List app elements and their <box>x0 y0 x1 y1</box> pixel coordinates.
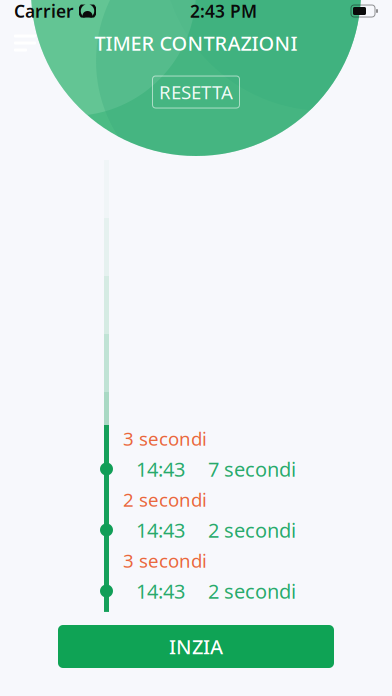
staticText: RESETTA <box>159 80 233 104</box>
button[interactable]: RESETTA <box>152 76 239 108</box>
staticText: 2 secondi <box>208 517 296 543</box>
staticText: 2:43 PM <box>190 0 257 22</box>
staticText: 2 secondi <box>123 487 207 512</box>
staticText: Carrier <box>14 0 74 22</box>
staticText: 3 secondi <box>123 426 207 451</box>
staticText: TIMER CONTRAZIONI <box>94 30 297 56</box>
button[interactable]: INZIA <box>58 625 334 668</box>
staticText: 14:43 <box>136 456 185 482</box>
staticText: INZIA <box>169 633 223 660</box>
staticText: 7 secondi <box>208 456 296 482</box>
button[interactable]: Menu <box>0 22 50 63</box>
staticText: 3 secondi <box>123 548 207 573</box>
staticText: 14:43 <box>136 578 185 604</box>
staticText: 14:43 <box>136 517 185 543</box>
staticText: 2 secondi <box>208 578 296 604</box>
